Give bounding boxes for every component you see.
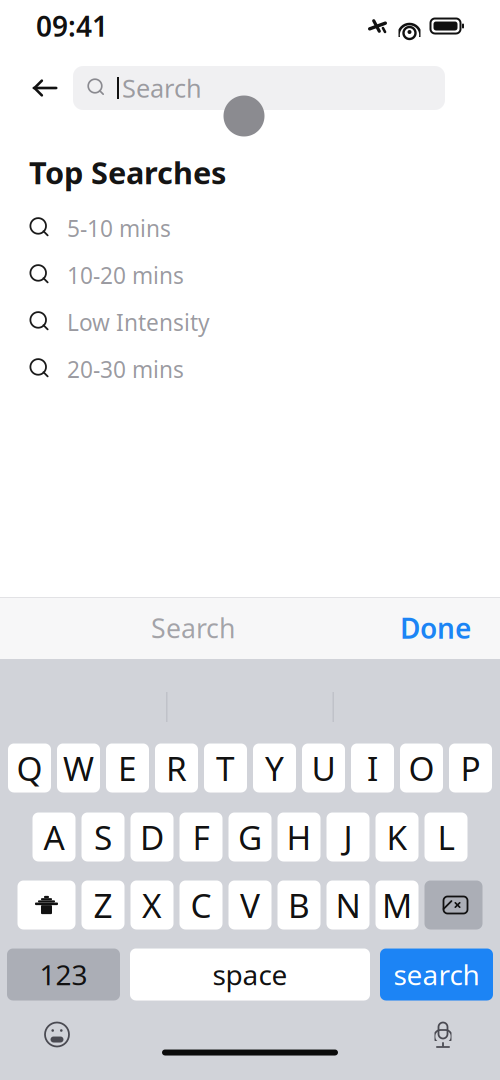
staticText: A	[43, 815, 64, 859]
staticText: T	[216, 746, 235, 790]
button[interactable]: space	[130, 948, 370, 1000]
staticText: G	[238, 815, 262, 859]
staticText: J	[343, 815, 352, 859]
staticText: Low Intensity	[67, 307, 210, 337]
staticText: W	[63, 746, 94, 790]
staticText: search	[393, 956, 479, 993]
button[interactable]: 20-30 mins	[0, 346, 500, 393]
button[interactable]: H	[277, 812, 320, 861]
button[interactable]: T	[204, 743, 247, 792]
button[interactable]: S	[81, 812, 124, 861]
button[interactable]: Low Intensity	[0, 299, 500, 346]
staticText: 10-20 mins	[67, 260, 184, 290]
staticText: M	[382, 883, 412, 927]
button[interactable]: Dictate	[416, 1011, 470, 1057]
button[interactable]: V	[228, 880, 271, 929]
button[interactable]: X	[130, 880, 173, 929]
staticText: E	[118, 746, 137, 790]
button[interactable]: E	[106, 743, 149, 792]
button[interactable]: F	[179, 812, 222, 861]
staticText: V	[240, 883, 260, 927]
button[interactable]: 10-20 mins	[0, 252, 500, 299]
button[interactable]: D	[130, 812, 173, 861]
staticText: H	[286, 815, 311, 859]
staticText: Y	[265, 746, 284, 790]
staticText: P	[460, 746, 480, 790]
button[interactable]: Delete	[424, 880, 482, 929]
button[interactable]: 5-10 mins	[0, 205, 500, 252]
button[interactable]: B	[277, 880, 320, 929]
staticText: Q	[16, 746, 42, 790]
button[interactable]: C	[179, 880, 222, 929]
button[interactable]: L	[424, 812, 467, 861]
staticText: Done	[400, 609, 471, 647]
staticText: Top Searches	[29, 152, 226, 193]
button[interactable]: N	[326, 880, 369, 929]
button[interactable]: Y	[253, 743, 296, 792]
staticText: 20-30 mins	[67, 354, 184, 384]
button[interactable]: Z	[81, 880, 124, 929]
staticText: X	[142, 883, 162, 927]
staticText: S	[94, 815, 112, 859]
button[interactable]: U	[302, 743, 345, 792]
button[interactable]: M	[375, 880, 418, 929]
button[interactable]: Back	[17, 64, 73, 112]
button[interactable]: Emoji	[30, 1011, 84, 1057]
staticText: Search	[122, 71, 202, 105]
button[interactable]: J	[326, 812, 369, 861]
staticText: Search	[151, 610, 235, 646]
button[interactable]: R	[155, 743, 198, 792]
button[interactable]: O	[400, 743, 443, 792]
button[interactable]: W	[57, 743, 100, 792]
staticText: Z	[93, 883, 112, 927]
staticText: U	[311, 746, 335, 790]
button[interactable]: Done	[386, 601, 485, 655]
staticText: 09:41	[36, 7, 108, 45]
staticText: D	[140, 815, 164, 859]
button[interactable]: P	[449, 743, 492, 792]
staticText: 5-10 mins	[67, 213, 171, 243]
staticText: R	[166, 746, 187, 790]
button[interactable]: Shift	[17, 880, 75, 929]
staticText: space	[212, 956, 287, 993]
staticText: N	[335, 883, 360, 927]
staticText: F	[192, 815, 209, 859]
staticText: K	[386, 815, 407, 859]
button[interactable]: search	[380, 948, 493, 1000]
staticText: I	[367, 746, 378, 790]
button[interactable]: Q	[8, 743, 51, 792]
staticText: L	[437, 815, 454, 859]
button[interactable]: Search	[73, 66, 445, 110]
button[interactable]: G	[228, 812, 271, 861]
button[interactable]: 123	[7, 948, 120, 1000]
button[interactable]: K	[375, 812, 418, 861]
staticText: O	[408, 746, 434, 790]
staticText: 123	[39, 956, 87, 993]
button[interactable]: A	[32, 812, 75, 861]
button[interactable]: I	[351, 743, 394, 792]
staticText: C	[190, 883, 211, 927]
staticText: B	[288, 883, 310, 927]
